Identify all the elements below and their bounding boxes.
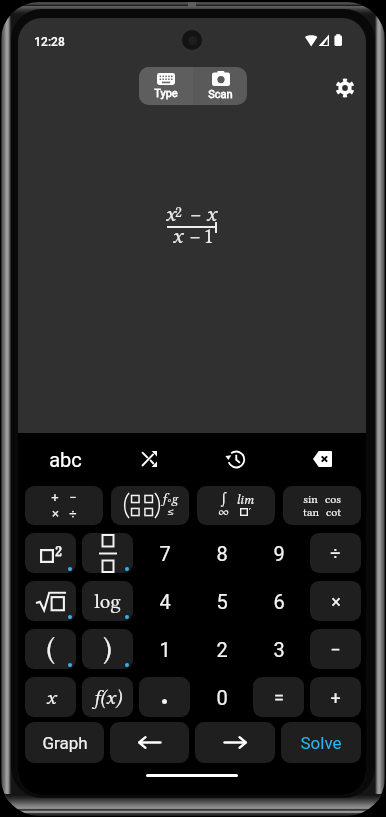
staticText: 3 xyxy=(273,638,285,661)
button[interactable]: ( xyxy=(25,629,76,669)
staticText: ÷ xyxy=(330,543,341,564)
staticText: sin xyxy=(303,492,318,506)
button[interactable]: Settings xyxy=(325,68,365,108)
button[interactable]: log xyxy=(82,581,133,621)
button[interactable]: ) xyxy=(82,629,133,669)
button[interactable]: Graph xyxy=(25,722,104,763)
button[interactable]: 1 xyxy=(139,629,190,669)
button[interactable]: Solve xyxy=(281,722,361,763)
staticText: f∘g xyxy=(162,490,178,506)
staticText: 2 xyxy=(55,543,62,560)
staticText: 4 xyxy=(159,590,171,613)
staticText: Type xyxy=(154,87,178,100)
staticText: 6 xyxy=(273,590,285,613)
staticText: ∞ xyxy=(218,504,229,519)
button[interactable]: 6 xyxy=(253,581,304,621)
staticText: 9 xyxy=(273,542,285,565)
staticText: 7 xyxy=(159,542,171,565)
staticText: abc xyxy=(49,448,82,471)
staticText: cot xyxy=(326,505,341,519)
button[interactable]: = xyxy=(253,677,304,717)
staticText: ′ xyxy=(248,505,251,518)
staticText: f(x) xyxy=(93,686,122,709)
button[interactable]: f∘g xyxy=(111,486,189,525)
button[interactable]: 8 xyxy=(196,533,247,573)
staticText: 1 xyxy=(159,638,171,661)
staticText: 0 xyxy=(216,686,228,709)
staticText: ( xyxy=(46,632,55,665)
button[interactable] xyxy=(139,677,190,717)
staticText: 1 xyxy=(203,223,214,248)
button[interactable]: 5 xyxy=(196,581,247,621)
staticText: − xyxy=(330,639,341,660)
staticText: 2 xyxy=(175,204,182,221)
button[interactable]: sin xyxy=(283,486,361,525)
staticText: × xyxy=(331,591,341,612)
staticText: x xyxy=(165,201,176,226)
staticText: ÷ xyxy=(69,506,77,521)
staticText: 8 xyxy=(216,542,228,565)
button[interactable] xyxy=(82,533,133,573)
button[interactable]: Backspace xyxy=(279,433,366,485)
staticText: cos xyxy=(325,492,341,506)
staticText: Graph xyxy=(42,733,88,753)
button[interactable]: × xyxy=(310,581,361,621)
staticText: Scan xyxy=(208,88,233,101)
other: Back xyxy=(138,736,162,749)
button[interactable] xyxy=(25,581,76,621)
button[interactable]: abc xyxy=(18,433,105,485)
button[interactable]: Forward xyxy=(195,722,275,763)
staticText: x xyxy=(46,685,56,709)
button[interactable]: 9 xyxy=(253,533,304,573)
button[interactable]: 2 xyxy=(25,533,76,573)
button[interactable]: Shuffle xyxy=(105,433,192,485)
staticText: lim xyxy=(236,492,254,507)
other: Forward xyxy=(223,736,247,749)
other: Backspace xyxy=(313,451,332,467)
button[interactable]: + xyxy=(25,486,103,525)
button[interactable]: Type xyxy=(139,67,193,105)
button[interactable]: + xyxy=(310,677,361,717)
staticText: × xyxy=(52,506,59,521)
staticText: + xyxy=(51,490,59,505)
button[interactable]: 3 xyxy=(253,629,304,669)
button[interactable]: ∫ xyxy=(197,486,275,525)
button[interactable]: x xyxy=(25,677,76,717)
other: History xyxy=(226,450,245,469)
button[interactable]: 0 xyxy=(196,677,247,717)
staticText: log xyxy=(94,589,121,613)
button[interactable]: History xyxy=(192,433,279,485)
staticText: 12:28 xyxy=(34,35,65,49)
staticText: ≤ xyxy=(167,503,174,518)
staticText: Solve xyxy=(300,733,342,753)
other: Shuffle xyxy=(141,451,157,467)
staticText: − xyxy=(69,490,77,505)
staticText: = xyxy=(274,687,284,708)
staticText: 2 xyxy=(216,638,228,661)
staticText: 5 xyxy=(216,590,228,613)
button[interactable]: Scan xyxy=(193,67,247,105)
staticText: ) xyxy=(103,632,112,665)
button[interactable]: 7 xyxy=(139,533,190,573)
button[interactable]: − xyxy=(310,629,361,669)
button[interactable]: Back xyxy=(110,722,189,763)
staticText: + xyxy=(330,687,341,708)
staticText: − x xyxy=(183,201,217,226)
button[interactable]: ÷ xyxy=(310,533,361,573)
staticText: ∫ xyxy=(221,489,227,507)
button[interactable]: f(x) xyxy=(82,677,133,717)
staticText: tan xyxy=(303,505,319,519)
button[interactable]: 2 xyxy=(196,629,247,669)
button[interactable]: 4 xyxy=(139,581,190,621)
staticText: x − xyxy=(169,223,203,248)
